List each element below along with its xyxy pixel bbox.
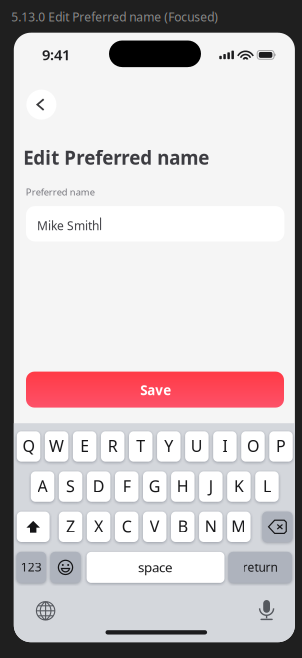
button[interactable]: D [87, 471, 110, 502]
button[interactable]: T [129, 431, 152, 462]
staticText: U [191, 435, 203, 456]
button[interactable]: return [14, 33, 77, 64]
button[interactable]: F [115, 471, 138, 502]
button[interactable]: H [171, 471, 195, 502]
staticText: X [94, 516, 103, 537]
staticText: 5.13.0 Edit Preferred name (Focused) [11, 9, 218, 25]
button[interactable]: O [241, 431, 265, 462]
staticText: return [243, 559, 278, 575]
button[interactable]: B [171, 512, 194, 542]
button[interactable]: Z [59, 512, 82, 542]
staticText: N [205, 516, 217, 537]
button[interactable]: I [213, 431, 237, 462]
button[interactable]: Dictate [259, 600, 274, 621]
staticText: E [80, 435, 89, 456]
staticText: B [178, 516, 188, 537]
button[interactable]: A [31, 471, 54, 502]
staticText: P [276, 435, 286, 456]
button[interactable]: P [269, 431, 293, 462]
button[interactable]: Delete [14, 33, 44, 63]
button[interactable]: Numbers [14, 33, 43, 64]
button[interactable]: Q [17, 431, 40, 462]
staticText: Save [140, 381, 171, 399]
staticText: space [138, 558, 173, 576]
staticText: S [66, 475, 75, 497]
button[interactable]: Save [26, 372, 284, 408]
button[interactable]: Shift [14, 33, 47, 63]
staticText: R [108, 435, 118, 456]
staticText: Preferred name [26, 186, 95, 198]
staticText: A [37, 475, 47, 497]
button[interactable]: X [87, 512, 110, 542]
staticText: G [149, 475, 161, 497]
button[interactable]: Back [26, 90, 56, 120]
staticText: Edit Preferred name [23, 145, 209, 170]
staticText: 9:41 [42, 45, 70, 64]
button[interactable]: N [199, 512, 223, 542]
staticText: L [263, 475, 271, 497]
staticText: O [247, 435, 259, 456]
staticText: Y [164, 435, 173, 456]
staticText: J [209, 475, 213, 497]
staticText: Q [23, 435, 35, 456]
staticText: M [231, 516, 246, 537]
button[interactable]: S [59, 471, 82, 502]
button[interactable]: Next keyboard [36, 601, 55, 621]
staticText: Z [66, 516, 75, 537]
staticText: V [150, 516, 160, 537]
button[interactable]: L [255, 471, 279, 502]
button[interactable]: Y [157, 431, 181, 462]
button[interactable]: C [115, 512, 138, 542]
staticText: C [122, 516, 132, 537]
button[interactable]: V [143, 512, 166, 542]
button[interactable]: U [185, 431, 209, 462]
button[interactable]: J [199, 471, 223, 502]
button[interactable]: Mike Smith [26, 206, 284, 241]
staticText: 123 [21, 559, 42, 575]
button[interactable]: space [14, 33, 152, 64]
button[interactable]: M [227, 512, 251, 542]
staticText: D [93, 475, 105, 497]
button[interactable]: G [143, 471, 166, 502]
staticText: H [177, 475, 189, 497]
staticText: Mike Smith [37, 218, 99, 234]
staticText: F [123, 475, 131, 497]
staticText: W [49, 435, 64, 456]
button[interactable]: K [227, 471, 251, 502]
button[interactable]: E [73, 431, 96, 462]
button[interactable]: Emoji [14, 33, 44, 64]
button[interactable]: W [45, 431, 68, 462]
staticText: K [234, 475, 244, 497]
staticText: T [136, 435, 145, 456]
button[interactable]: R [101, 431, 124, 462]
staticText: I [222, 435, 227, 456]
